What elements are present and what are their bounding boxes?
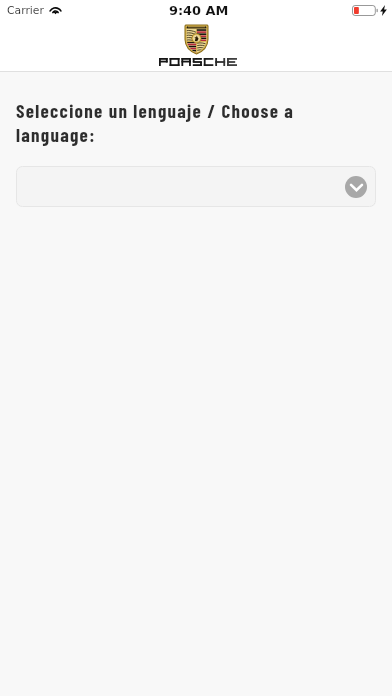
staticText: 9:40 AM bbox=[169, 3, 229, 18]
button[interactable]: Choose a language bbox=[16, 166, 376, 207]
staticText: Carrier bbox=[7, 4, 44, 17]
staticText: Seleccione un lenguaje / Choose a langua… bbox=[16, 99, 295, 146]
